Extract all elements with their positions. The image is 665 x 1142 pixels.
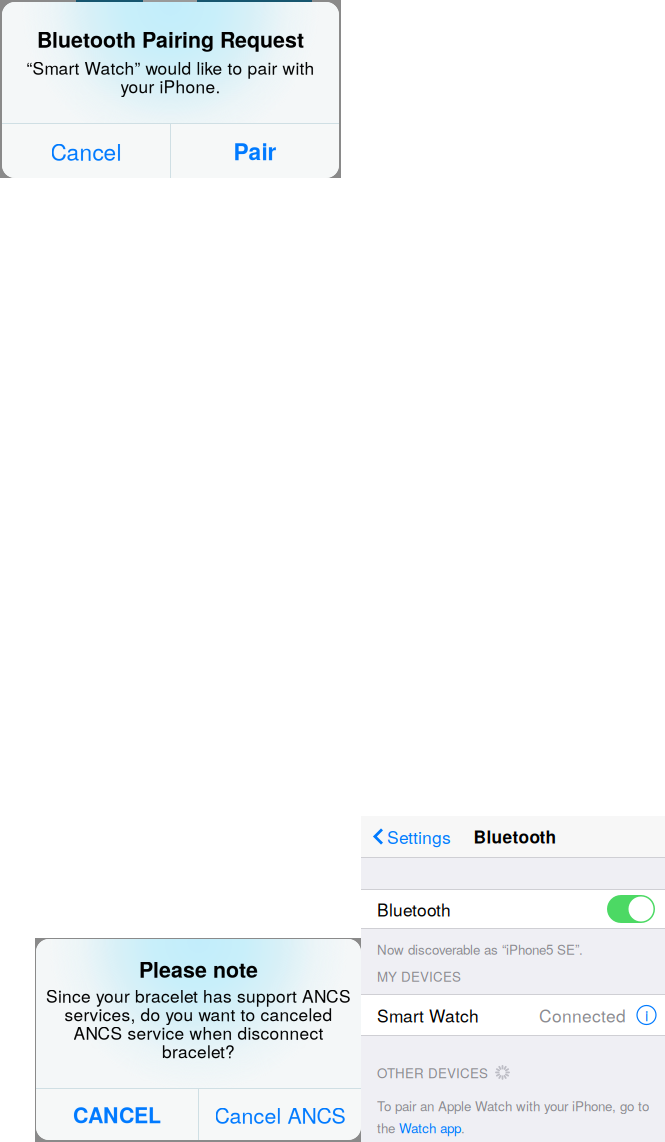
button[interactable]: Smart Watch xyxy=(361,995,665,1035)
button[interactable]: Cancel ANCS xyxy=(199,1089,361,1140)
staticText: Bluetooth xyxy=(473,824,556,849)
staticText: i xyxy=(645,1004,648,1025)
button[interactable]: Cancel xyxy=(2,124,170,178)
staticText: . xyxy=(461,1118,465,1137)
staticText: Now discoverable as “iPhone5 SE”. xyxy=(377,939,583,958)
button[interactable]: Watch app xyxy=(399,1118,461,1137)
button[interactable]: Pair xyxy=(171,124,339,178)
staticText: Smart Watch xyxy=(377,1003,479,1027)
staticText: bracelet? xyxy=(162,1038,235,1063)
staticText: Cancel ANCS xyxy=(214,1099,345,1130)
staticText: Connected xyxy=(539,1003,626,1027)
staticText: “Smart Watch” would like to pair with xyxy=(26,55,314,80)
staticText: MY DEVICES xyxy=(377,966,461,986)
staticText: CANCEL xyxy=(73,1099,161,1130)
staticText: Cancel xyxy=(50,135,121,167)
staticText: To pair an Apple Watch with your iPhone,… xyxy=(377,1096,649,1115)
staticText: services, do you want to canceled xyxy=(64,1001,332,1026)
staticText: the xyxy=(377,1118,399,1137)
button[interactable]: Bluetooth, on xyxy=(607,895,655,923)
staticText: Pair xyxy=(233,135,276,167)
button[interactable]: Settings xyxy=(361,813,451,860)
staticText: Since your bracelet has support ANCS xyxy=(46,983,351,1008)
staticText: OTHER DEVICES xyxy=(377,1063,488,1082)
staticText: Bluetooth Pairing Request xyxy=(37,24,304,54)
staticText: your iPhone. xyxy=(120,73,220,98)
staticText: Watch app xyxy=(399,1118,461,1137)
staticText: ANCS service when disconnect xyxy=(73,1020,323,1045)
staticText: Bluetooth xyxy=(377,897,451,921)
staticText: Settings xyxy=(387,824,451,849)
button[interactable]: CANCEL xyxy=(36,1089,198,1140)
staticText: Please note xyxy=(139,954,258,984)
